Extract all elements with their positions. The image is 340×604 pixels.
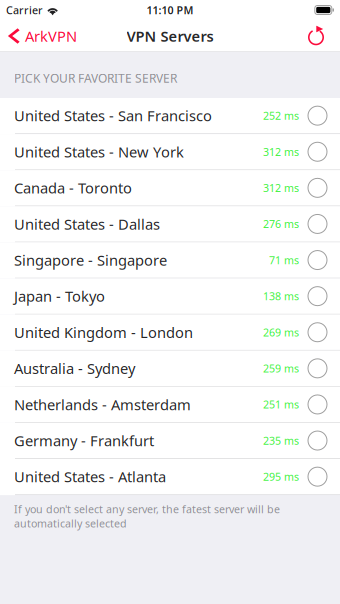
button[interactable]: Refresh: [307, 20, 340, 52]
staticText: ArkVPN: [25, 26, 77, 46]
button[interactable]: Singapore - Singapore: [0, 242, 340, 278]
button[interactable]: Japan - Tokyo: [0, 278, 340, 315]
staticText: 259 ms: [263, 361, 299, 375]
staticText: 11:10 PM: [146, 3, 193, 17]
button[interactable]: United States - Atlanta: [0, 459, 340, 495]
button[interactable]: Canada - Toronto: [0, 170, 340, 206]
staticText: 252 ms: [263, 109, 299, 123]
button[interactable]: United States - San Francisco: [0, 98, 340, 134]
staticText: United States - New York: [14, 142, 184, 161]
staticText: Australia - Sydney: [14, 359, 135, 378]
staticText: 251 ms: [263, 397, 299, 412]
staticText: 312 ms: [263, 145, 299, 159]
staticText: 295 ms: [263, 470, 299, 484]
staticText: 71 ms: [269, 253, 299, 267]
staticText: United States - Atlanta: [14, 467, 166, 486]
button[interactable]: United States - New York: [0, 134, 340, 170]
button[interactable]: ArkVPN: [0, 20, 83, 52]
staticText: If you don't select any server, the fate…: [14, 502, 280, 530]
staticText: United Kingdom - London: [14, 322, 193, 342]
staticText: VPN Servers: [126, 26, 213, 46]
staticText: 312 ms: [263, 181, 299, 195]
button[interactable]: Germany - Frankfurt: [0, 423, 340, 459]
staticText: United States - Dallas: [14, 214, 160, 234]
staticText: 276 ms: [263, 217, 299, 231]
staticText: Singapore - Singapore: [14, 250, 167, 270]
staticText: 269 ms: [263, 325, 299, 339]
staticText: United States - San Francisco: [14, 106, 212, 125]
button[interactable]: Netherlands - Amsterdam: [0, 387, 340, 423]
button[interactable]: United States - Dallas: [0, 206, 340, 242]
staticText: Carrier: [6, 3, 43, 17]
staticText: Japan - Tokyo: [14, 286, 105, 306]
staticText: Germany - Frankfurt: [14, 431, 154, 450]
staticText: PICK YOUR FAVORITE SERVER: [14, 70, 177, 86]
staticText: Canada - Toronto: [14, 178, 132, 198]
staticText: 235 ms: [263, 433, 299, 448]
button[interactable]: Australia - Sydney: [0, 351, 340, 387]
staticText: 138 ms: [263, 289, 299, 303]
button[interactable]: United Kingdom - London: [0, 315, 340, 351]
staticText: Netherlands - Amsterdam: [14, 395, 191, 414]
